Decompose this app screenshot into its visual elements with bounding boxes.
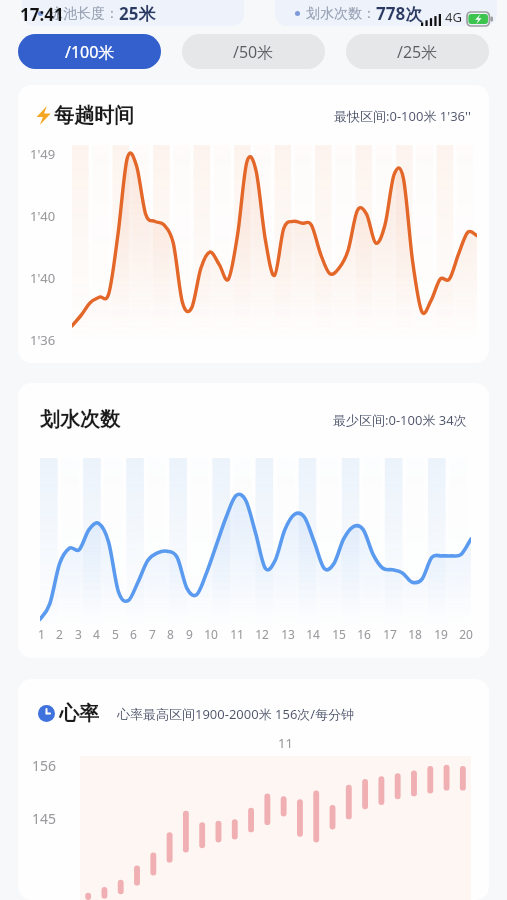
button[interactable]: 划水次数 <box>18 383 489 658</box>
staticText: 11 <box>278 734 293 752</box>
staticText: 1'40 <box>30 269 56 287</box>
staticText: 10 <box>204 626 218 642</box>
staticText: 16 <box>357 626 371 642</box>
staticText: 15 <box>332 626 346 642</box>
staticText: 20 <box>459 626 473 642</box>
staticText: 14 <box>306 626 320 642</box>
staticText: 4 <box>93 626 100 642</box>
staticText: 17 <box>383 626 397 642</box>
staticText: 7 <box>149 626 156 642</box>
staticText: 9 <box>186 626 193 642</box>
staticText: 心率 <box>59 701 99 726</box>
staticText: 18 <box>408 626 422 642</box>
staticText: /50米 <box>233 41 274 63</box>
staticText: 1'40 <box>30 207 56 225</box>
staticText: 13 <box>281 626 295 642</box>
staticText: /100米 <box>65 41 115 63</box>
staticText: 19 <box>434 626 448 642</box>
staticText: 1'49 <box>30 145 56 163</box>
staticText: 156 <box>32 756 57 775</box>
staticText: 最少区间:0-100米 34次 <box>333 411 467 429</box>
staticText: 每趟时间 <box>54 103 134 128</box>
staticText: 4G <box>445 8 462 26</box>
staticText: 最快区间:0-100米 1'36'' <box>334 107 471 125</box>
button[interactable]: /25米 <box>346 34 489 69</box>
staticText: 6 <box>130 626 137 642</box>
staticText: 心率最高区间1900-2000米 156次/每分钟 <box>117 705 355 723</box>
staticText: 25米 <box>119 2 156 25</box>
staticText: 划水次数： <box>306 5 376 23</box>
staticText: 5 <box>112 626 119 642</box>
staticText: 145 <box>32 809 57 828</box>
staticText: 12 <box>255 626 269 642</box>
staticText: 778次 <box>376 2 423 25</box>
button[interactable]: 泳池长度： <box>22 0 244 26</box>
staticText: 划水次数 <box>40 407 120 432</box>
staticText: 泳池长度： <box>49 5 119 23</box>
button[interactable]: 划水次数： <box>275 0 497 26</box>
button[interactable]: 每趟时间 <box>18 85 489 363</box>
button[interactable]: /50米 <box>182 34 325 69</box>
button[interactable]: /100米 <box>18 34 161 69</box>
staticText: 11 <box>230 626 244 642</box>
staticText: /25米 <box>397 41 438 63</box>
staticText: 2 <box>56 626 63 642</box>
button[interactable]: 心率 <box>18 679 489 900</box>
staticText: 1'36 <box>30 331 56 349</box>
staticText: 8 <box>167 626 174 642</box>
staticText: 1 <box>38 626 45 642</box>
staticText: 3 <box>75 626 82 642</box>
staticText: 17:41 <box>20 3 64 26</box>
